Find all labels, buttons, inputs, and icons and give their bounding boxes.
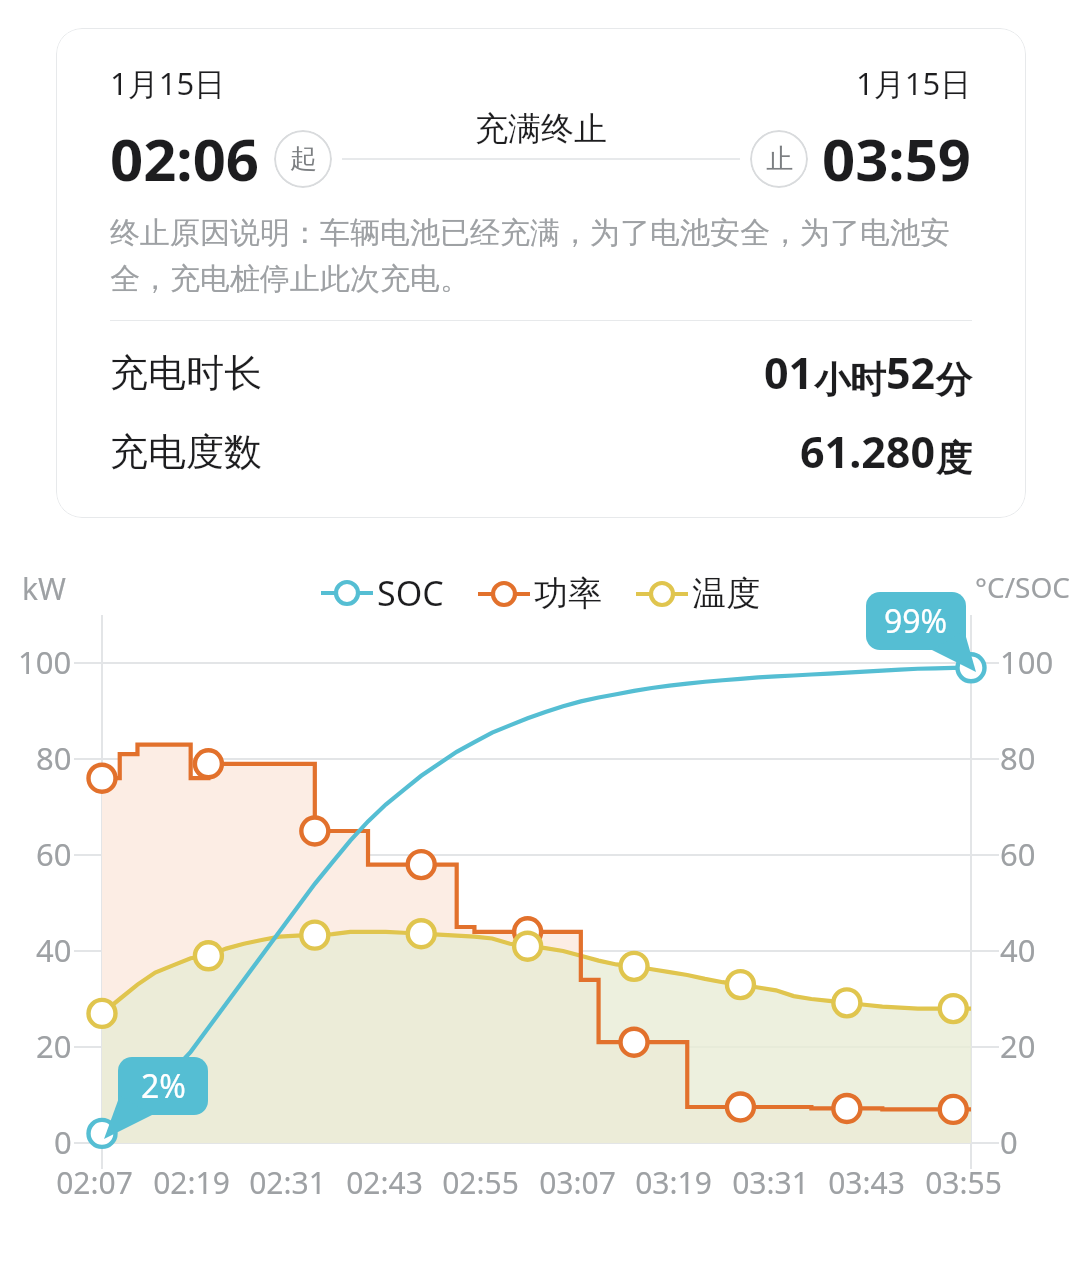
staticText: 充电时长 — [110, 349, 262, 397]
staticText: 02:07 — [56, 1162, 133, 1203]
staticText: 40 — [36, 929, 72, 971]
button[interactable]: 1月15日 — [56, 28, 1026, 518]
staticText: SOC — [377, 570, 444, 616]
staticText: 02:31 — [249, 1162, 326, 1203]
staticText: 100 — [1000, 641, 1054, 683]
staticText: 60 — [1000, 833, 1036, 875]
button[interactable]: 起 — [274, 130, 332, 188]
staticText: 20 — [1000, 1025, 1036, 1067]
button[interactable]: 功率 — [478, 572, 602, 615]
staticText: kW — [22, 568, 66, 609]
staticText: °C/SOC — [975, 568, 1071, 606]
staticText: 0 — [1000, 1121, 1018, 1163]
staticText: 0 — [54, 1121, 72, 1163]
staticText: 60 — [36, 833, 72, 875]
staticText: 终止原因说明：车辆电池已经充满，为了电池安全，为了电池安全，充电桩停止此次充电。 — [110, 214, 972, 298]
staticText: 03:07 — [539, 1162, 616, 1203]
staticText: 止 — [766, 142, 793, 176]
staticText: 分 — [936, 357, 972, 402]
staticText: 03:59 — [822, 119, 972, 198]
staticText: 2% — [141, 1064, 186, 1108]
button[interactable]: SOC — [321, 570, 444, 616]
staticText: 80 — [36, 737, 72, 779]
button[interactable]: 充电度数 — [110, 422, 972, 481]
staticText: 02:43 — [346, 1162, 423, 1203]
staticText: 1月15日 — [856, 62, 972, 104]
staticText: 起 — [290, 142, 317, 176]
staticText: 61.280 — [800, 422, 936, 481]
staticText: 03:55 — [925, 1162, 1002, 1203]
button[interactable]: 充电时长 — [110, 343, 972, 402]
staticText: 20 — [36, 1025, 72, 1067]
staticText: 02:55 — [442, 1162, 519, 1203]
staticText: 02:19 — [153, 1162, 230, 1203]
staticText: 02:06 — [110, 119, 260, 198]
staticText: 99% — [884, 599, 948, 643]
button[interactable]: 温度 — [636, 572, 760, 615]
staticText: 01 — [764, 343, 814, 402]
staticText: 功率 — [534, 572, 602, 615]
staticText: 充电度数 — [110, 428, 262, 476]
staticText: 03:43 — [828, 1162, 905, 1203]
staticText: 温度 — [692, 572, 760, 615]
staticText: 80 — [1000, 737, 1036, 779]
staticText: 40 — [1000, 929, 1036, 971]
staticText: 03:31 — [732, 1162, 809, 1203]
staticText: 03:19 — [635, 1162, 712, 1203]
staticText: 52 — [886, 343, 936, 402]
staticText: 充满终止 — [475, 108, 607, 150]
staticText: 度 — [936, 436, 972, 481]
staticText: 小时 — [814, 357, 886, 402]
staticText: 100 — [18, 641, 72, 683]
button[interactable]: 止 — [750, 130, 808, 188]
staticText: 1月15日 — [110, 62, 226, 104]
